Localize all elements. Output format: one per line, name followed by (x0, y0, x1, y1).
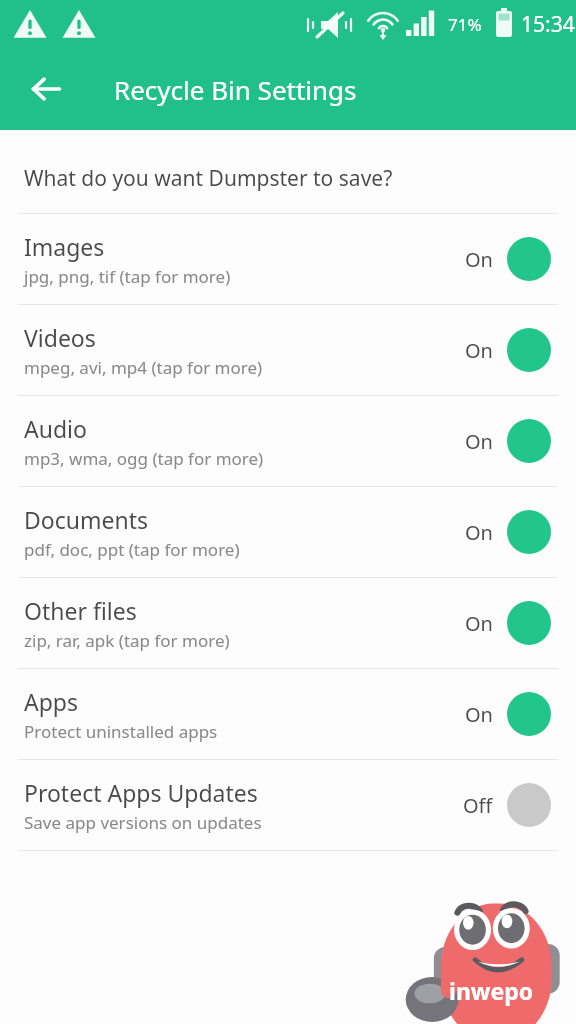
staticText: Save app versions on updates (24, 811, 262, 834)
staticText: Off (463, 792, 493, 819)
staticText: 15:34 (521, 10, 575, 39)
button[interactable]: Audio (0, 396, 576, 486)
button[interactable]: Other files (0, 578, 576, 668)
button[interactable]: Apps (0, 669, 576, 759)
staticText: inwepo (449, 975, 534, 1006)
staticText: What do you want Dumpster to save? (24, 164, 393, 193)
button[interactable]: Back (20, 63, 72, 115)
button[interactable]: Videos (0, 305, 576, 395)
staticText: Documents (24, 504, 148, 535)
staticText: On (465, 519, 493, 546)
staticText: Recycle Bin Settings (114, 72, 357, 107)
button[interactable]: Images (0, 214, 576, 304)
staticText: jpg, png, tif (tap for more) (24, 265, 231, 288)
staticText: mp3, wma, ogg (tap for more) (24, 447, 264, 470)
staticText: Protect Apps Updates (24, 777, 258, 808)
button[interactable]: Protect Apps Updates (0, 760, 576, 850)
staticText: zip, rar, apk (tap for more) (24, 629, 230, 652)
staticText: Audio (24, 413, 87, 444)
staticText: On (465, 337, 493, 364)
staticText: Apps (24, 686, 79, 717)
staticText: Images (24, 231, 105, 262)
staticText: mpeg, avi, mp4 (tap for more) (24, 356, 263, 379)
staticText: Other files (24, 595, 137, 626)
staticText: On (465, 246, 493, 273)
staticText: pdf, doc, ppt (tap for more) (24, 538, 240, 561)
staticText: On (465, 428, 493, 455)
staticText: On (465, 610, 493, 637)
staticText: 71% (448, 13, 482, 36)
staticText: Videos (24, 322, 96, 353)
button[interactable]: Documents (0, 487, 576, 577)
staticText: On (465, 701, 493, 728)
staticText: Protect uninstalled apps (24, 720, 218, 743)
